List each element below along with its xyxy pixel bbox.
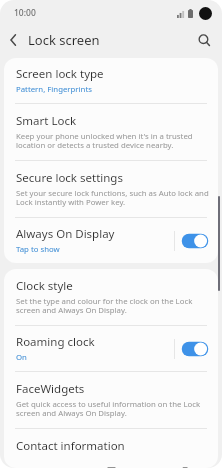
button[interactable]: Roaming clock	[4, 326, 218, 371]
button[interactable]: Back	[0, 27, 26, 53]
button[interactable]: Always On Display	[180, 230, 210, 252]
staticText: Always On Display	[16, 226, 115, 242]
staticText: 10:00	[14, 7, 36, 19]
staticText: Keep your phone unlocked when it's in a …	[16, 131, 210, 151]
button[interactable]: Secure lock settings	[4, 161, 218, 217]
staticText: Set the type and colour for the clock on…	[16, 296, 210, 316]
staticText: Pattern, Fingerprints	[16, 84, 92, 95]
staticText: FaceWidgets	[16, 381, 85, 397]
button[interactable]: Search	[192, 28, 216, 52]
staticText: Lock screen	[28, 31, 100, 49]
button[interactable]: Smart Lock	[4, 104, 218, 160]
staticText: Clock style	[16, 278, 73, 294]
staticText: Smart Lock	[16, 113, 77, 129]
staticText: Screen lock type	[16, 66, 104, 82]
button[interactable]: Contact information	[4, 429, 218, 468]
button[interactable]: FaceWidgets	[4, 372, 218, 428]
staticText: Contact information	[16, 438, 125, 454]
staticText: Get quick access to useful information o…	[16, 399, 210, 419]
staticText: Tap to show	[16, 244, 60, 255]
staticText: Secure lock settings	[16, 170, 123, 186]
button[interactable]: Screen lock type	[4, 58, 218, 103]
button[interactable]: Always On Display	[4, 218, 218, 263]
button[interactable]: Roaming clock	[180, 338, 210, 360]
staticText: Roaming clock	[16, 334, 95, 350]
button[interactable]: Clock style	[4, 269, 218, 325]
staticText: Set your secure lock functions, such as …	[16, 188, 210, 208]
staticText: On	[16, 352, 27, 363]
